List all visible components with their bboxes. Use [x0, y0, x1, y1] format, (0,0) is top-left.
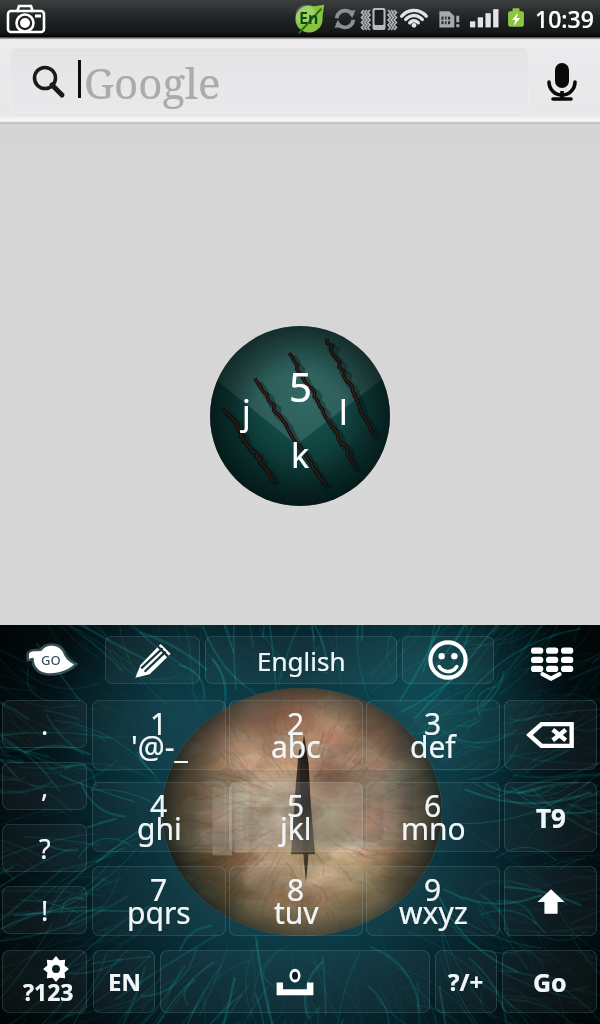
staticText: l [339, 389, 348, 435]
staticText: ?/+ [448, 965, 484, 998]
button[interactable]: , [2, 762, 87, 810]
staticText: 10:39 [535, 3, 594, 34]
staticText: ? [39, 830, 51, 867]
staticText: 9 [424, 869, 442, 910]
staticText: pqrs [127, 892, 191, 933]
staticText: j [242, 389, 251, 435]
staticText: 2 [287, 703, 305, 744]
staticText: ghi [137, 808, 182, 849]
button[interactable]: GO keyboard settings [26, 642, 74, 676]
staticText: EN [108, 965, 141, 998]
staticText: 1 [150, 703, 168, 744]
staticText: 3 [424, 703, 442, 744]
staticText: 8 [287, 869, 305, 910]
button[interactable]: 6 [366, 782, 500, 852]
button[interactable]: Symbols and settings [2, 950, 87, 1013]
button[interactable]: 1 [92, 700, 226, 770]
staticText: 7 [150, 869, 168, 910]
staticText: tuv [274, 892, 319, 933]
button[interactable]: Space [160, 950, 430, 1013]
button[interactable]: 8 [229, 866, 363, 936]
staticText: wxyz [399, 892, 468, 933]
staticText: mno [401, 808, 466, 849]
button[interactable]: T9 [504, 782, 597, 852]
button[interactable]: 7 [92, 866, 226, 936]
staticText: English [257, 643, 346, 678]
staticText: Go [533, 965, 567, 999]
staticText: def [410, 726, 456, 767]
staticText: ?123 [23, 976, 74, 1007]
staticText: GO [41, 651, 61, 669]
staticText: En [299, 7, 319, 29]
button[interactable]: ?/+ [435, 950, 497, 1013]
button[interactable]: Voice search [538, 57, 586, 105]
button[interactable]: Go [502, 950, 597, 1013]
staticText: Google [84, 54, 221, 111]
staticText: 5 [287, 785, 305, 826]
staticText: T9 [536, 800, 566, 835]
button[interactable]: . [2, 700, 87, 748]
button[interactable]: Shift [504, 866, 597, 936]
staticText: 4 [150, 785, 168, 826]
staticText: k [291, 432, 310, 478]
staticText: ! [41, 892, 49, 929]
button[interactable]: ? [2, 824, 87, 872]
button[interactable]: 9 [366, 866, 500, 936]
button[interactable]: EN [93, 950, 155, 1013]
button[interactable]: 5 [229, 782, 363, 852]
button[interactable]: 2 [229, 700, 363, 770]
staticText: 6 [424, 785, 442, 826]
staticText: '@-_ [131, 726, 188, 767]
staticText: jkl [280, 808, 312, 849]
button[interactable]: Switch keyboard layout [526, 643, 576, 681]
button[interactable]: ! [2, 886, 87, 934]
staticText: , [41, 768, 49, 805]
button[interactable]: Google [10, 48, 529, 113]
button[interactable]: Emoji [402, 636, 494, 684]
staticText: . [41, 706, 49, 743]
button[interactable]: 3 [366, 700, 500, 770]
button[interactable]: Handwriting [105, 636, 200, 684]
button[interactable]: Delete [504, 700, 597, 770]
button[interactable]: 4 [92, 782, 226, 852]
staticText: abc [271, 726, 321, 767]
button[interactable]: English [205, 636, 397, 684]
staticText: 5 [289, 359, 312, 413]
